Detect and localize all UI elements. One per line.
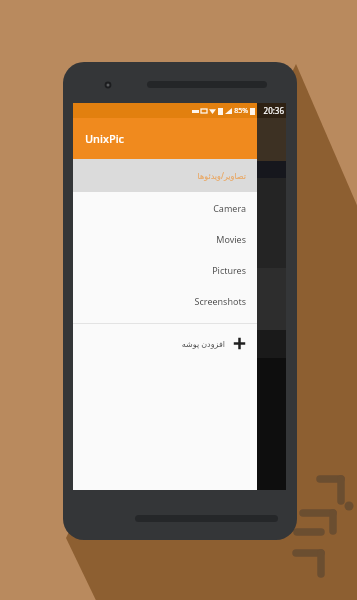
- staticText: UnixPic: [84, 131, 124, 146]
- button[interactable]: تصاویر/ویدئوها: [73, 159, 257, 192]
- staticText: 20:36: [263, 105, 284, 116]
- button[interactable]: Camera: [73, 192, 257, 223]
- other: Add folder: [233, 337, 246, 350]
- staticText: Pictures: [212, 264, 246, 276]
- staticText: 85%: [234, 106, 248, 116]
- staticText: افزودن پوشه: [181, 338, 225, 349]
- button[interactable]: Movies: [73, 223, 257, 254]
- staticText: Movies: [216, 233, 246, 245]
- staticText: Camera: [213, 202, 246, 214]
- staticText: Screenshots: [194, 295, 246, 307]
- button[interactable]: Pictures: [73, 254, 257, 285]
- button[interactable]: Screenshots: [73, 285, 257, 316]
- staticText: تصاویر/ویدئوها: [197, 170, 246, 181]
- button[interactable]: افزودن پوشه: [73, 327, 257, 360]
